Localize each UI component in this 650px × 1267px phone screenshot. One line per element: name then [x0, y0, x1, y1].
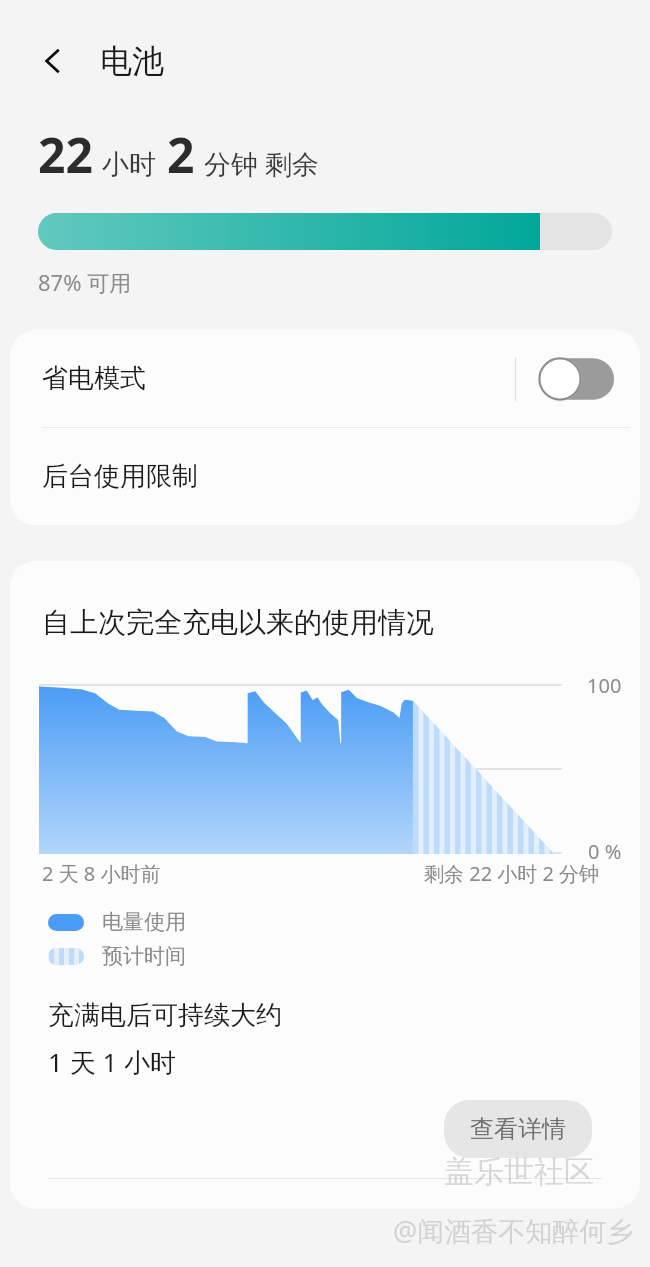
button[interactable]: 后台使用限制 — [10, 428, 640, 525]
staticText: 2 — [167, 122, 195, 187]
staticText: 省电模式 — [42, 362, 146, 395]
staticText: 100 — [587, 672, 622, 699]
staticText: 预计时间 — [102, 943, 186, 969]
staticText: @闻酒香不知醉何乡 — [393, 1212, 634, 1249]
staticText: 22 — [38, 122, 93, 187]
staticText: 查看详情 — [470, 1114, 566, 1144]
staticText: 后台使用限制 — [42, 460, 198, 493]
staticText: 电量使用 — [102, 909, 186, 935]
staticText: 1 天 1 小时 — [48, 1044, 177, 1080]
staticText: 充满电后可持续大约 — [48, 999, 282, 1032]
staticText: 小时 — [102, 148, 156, 182]
button[interactable]: 查看详情 — [444, 1100, 592, 1158]
staticText: 87% 可用 — [38, 267, 132, 297]
staticText: 剩余 22 小时 2 分钟 — [424, 860, 600, 887]
button[interactable]: 省电模式 开关 — [538, 357, 614, 401]
staticText: 电池 — [100, 41, 164, 81]
staticText: 2 天 8 小时前 — [42, 860, 161, 887]
staticText: 0 % — [588, 838, 622, 865]
staticText: 盖乐世社区 — [444, 1153, 594, 1191]
button[interactable]: Back — [26, 34, 80, 88]
staticText: 分钟 剩余 — [204, 145, 320, 182]
staticText: 自上次完全充电以来的使用情况 — [42, 605, 434, 640]
button[interactable]: 省电模式 — [10, 330, 640, 427]
